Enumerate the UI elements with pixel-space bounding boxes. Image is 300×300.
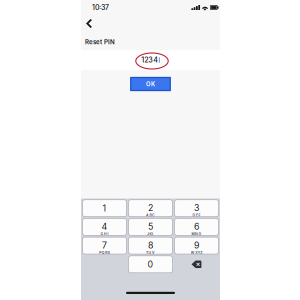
staticText: DEF (192, 213, 201, 217)
staticText: 8 (148, 240, 153, 251)
staticText: GHI (100, 232, 109, 236)
staticText: WXYZ (191, 251, 202, 255)
staticText: 1234 (141, 56, 158, 64)
button[interactable]: 9 (174, 237, 218, 254)
button[interactable]: Back (81, 16, 100, 31)
staticText: TUV (146, 251, 155, 255)
staticText: 9 (194, 240, 199, 251)
staticText: 2 (148, 203, 153, 213)
staticText: 0 (147, 259, 153, 270)
staticText: JKL (147, 232, 154, 236)
staticText: 4 (101, 221, 107, 232)
button[interactable]: 2 (128, 200, 172, 217)
button[interactable]: OK (131, 77, 170, 90)
staticText: 1 (102, 203, 106, 213)
staticText: PQRS (99, 251, 110, 255)
button[interactable]: 3 (174, 200, 218, 217)
staticText: 6 (194, 221, 199, 232)
button[interactable]: 6 (174, 218, 218, 235)
button[interactable]: 4 (82, 218, 126, 235)
staticText: 7 (102, 240, 107, 251)
button[interactable]: 7 (82, 237, 126, 254)
button[interactable]: 5 (128, 218, 172, 235)
button[interactable]: 0 (128, 256, 172, 273)
button[interactable]: 8 (128, 237, 172, 254)
staticText: 5 (148, 221, 153, 232)
button[interactable]: Delete (174, 256, 218, 273)
staticText: Reset PIN (85, 38, 115, 46)
staticText: OK (146, 80, 155, 88)
staticText: 10:37 (92, 3, 109, 12)
staticText: 3 (194, 203, 199, 213)
button[interactable]: 1 (82, 200, 126, 217)
staticText: MNO (191, 232, 202, 236)
staticText: ABC (146, 213, 155, 217)
